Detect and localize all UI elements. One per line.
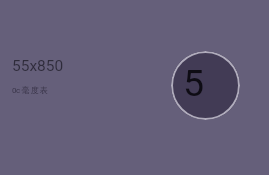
staticText: 5: [183, 61, 205, 105]
staticText: 0c 毫 度 表: [12, 85, 48, 95]
button[interactable]: Rating 5: [171, 51, 240, 120]
staticText: 55x850: [12, 57, 64, 75]
